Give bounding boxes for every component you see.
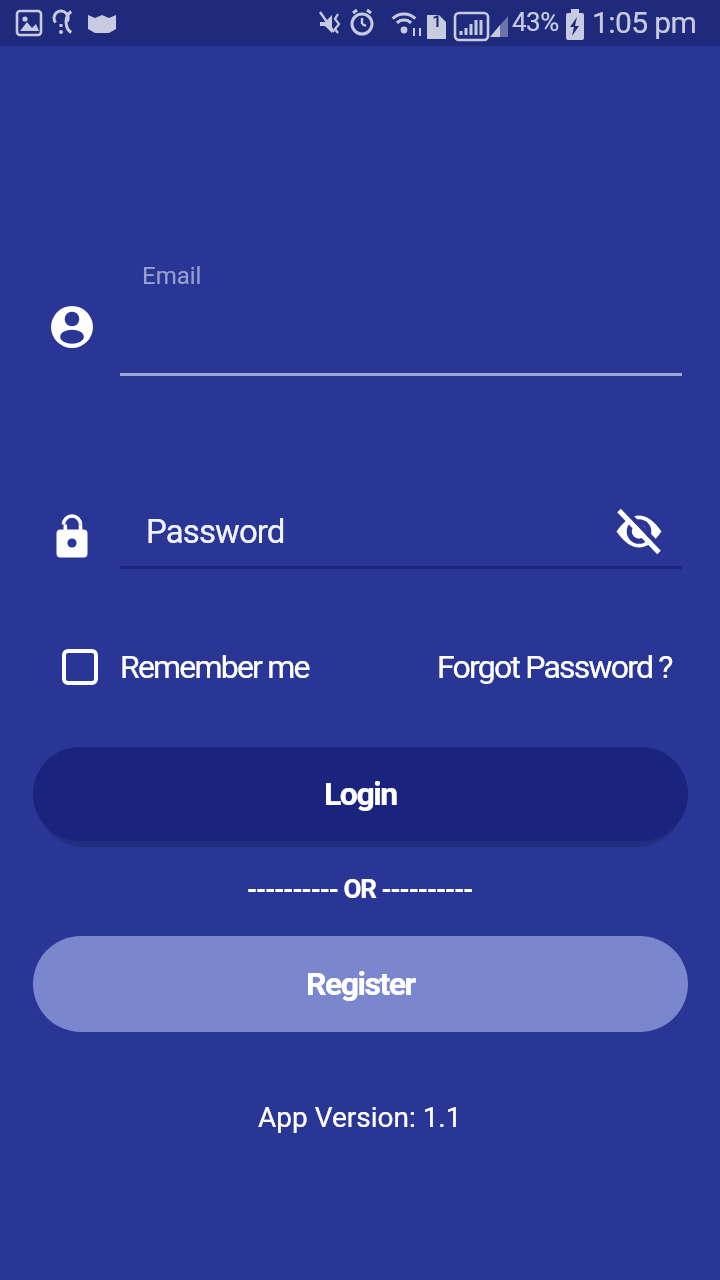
button[interactable]: Forgot Password ? bbox=[437, 648, 672, 686]
staticText: Login bbox=[324, 775, 397, 813]
button[interactable] bbox=[120, 500, 682, 566]
button[interactable] bbox=[120, 250, 682, 376]
staticText: ---------- OR ---------- bbox=[247, 874, 473, 904]
staticText: Remember me bbox=[120, 648, 309, 686]
staticText: Register bbox=[306, 965, 415, 1003]
button[interactable]: Remember me bbox=[62, 648, 309, 686]
staticText: App Version: 1.1 bbox=[258, 1101, 462, 1134]
staticText: Email bbox=[142, 262, 202, 290]
staticText: 1 bbox=[432, 11, 442, 31]
button[interactable]: Login bbox=[33, 747, 688, 841]
staticText: 1:05 pm bbox=[592, 5, 697, 40]
button[interactable]: Register bbox=[33, 936, 688, 1032]
staticText: Password bbox=[146, 512, 285, 551]
staticText: 43% bbox=[512, 7, 559, 37]
